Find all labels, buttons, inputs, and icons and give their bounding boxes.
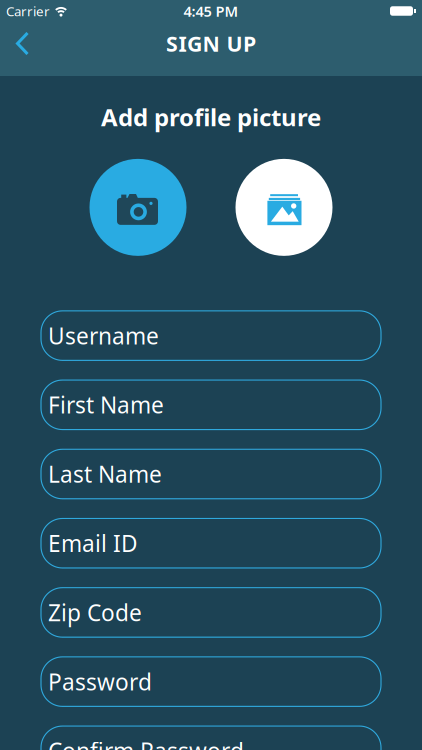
button[interactable]: First Name <box>41 380 381 430</box>
button[interactable]: Zip Code <box>41 588 381 637</box>
staticText: Zip Code <box>48 597 142 627</box>
button[interactable]: Email ID <box>41 518 381 568</box>
staticText: First Name <box>48 390 164 420</box>
button[interactable]: Last Name <box>41 449 381 499</box>
button[interactable]: Password <box>41 657 381 706</box>
button[interactable] <box>89 159 186 256</box>
staticText: Username <box>48 321 159 351</box>
button[interactable] <box>235 159 332 256</box>
staticText: SIGN UP <box>166 29 256 58</box>
button[interactable]: Username <box>41 311 381 360</box>
staticText: Password <box>48 667 152 697</box>
button[interactable] <box>0 24 29 62</box>
staticText: Confirm Password <box>48 736 244 750</box>
staticText: 4:45 PM <box>183 1 238 21</box>
staticText: Email ID <box>48 528 138 558</box>
staticText: Add profile picture <box>101 101 321 133</box>
button[interactable]: Confirm Password <box>41 726 381 750</box>
staticText: Carrier <box>6 2 50 20</box>
staticText: Last Name <box>48 459 162 489</box>
